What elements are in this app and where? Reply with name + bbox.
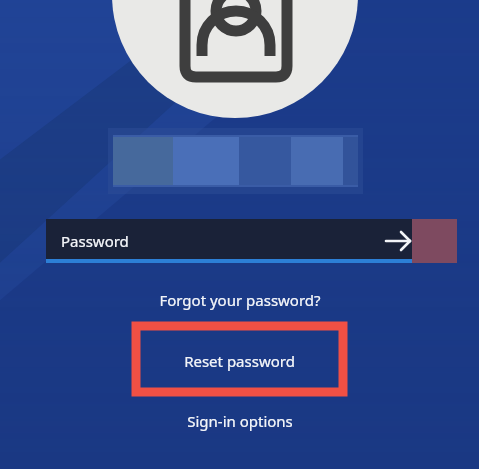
button[interactable]: Reset password — [0, 349, 479, 373]
button[interactable]: Forgot your password? — [0, 288, 479, 312]
other: Highlight — [0, 0, 479, 469]
staticText: Sign-in options — [187, 411, 293, 431]
button[interactable]: Password field — [46, 219, 412, 263]
staticText: Password — [61, 231, 129, 251]
staticText: Reset password — [184, 351, 295, 371]
staticText: Forgot your password? — [159, 290, 321, 310]
button[interactable]: Sign-in options — [0, 409, 479, 433]
